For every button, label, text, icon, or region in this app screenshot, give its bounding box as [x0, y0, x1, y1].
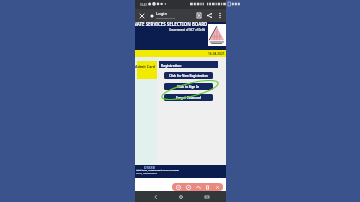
button[interactable]: Screenshot — [203, 183, 211, 191]
button[interactable]: Camera — [194, 183, 202, 191]
staticText: Click for New Registration — [169, 74, 209, 78]
button[interactable]: Click for New Registration — [164, 72, 213, 79]
button[interactable]: Close — [136, 10, 147, 21]
button[interactable]: Draw — [184, 183, 192, 191]
staticText: Forgot Password — [176, 96, 201, 100]
button[interactable]: Stop recording — [213, 183, 221, 191]
staticText: DSSSB — [144, 165, 155, 170]
staticText: 14-04-2021 — [208, 52, 225, 56]
button[interactable]: Click to Sign In — [164, 83, 213, 90]
staticText: dsssb — [136, 167, 143, 170]
staticText: Admit Card — [135, 64, 155, 69]
staticText: Government of NCT of Delhi — [169, 28, 206, 32]
button[interactable]: More options — [215, 9, 225, 22]
button[interactable]: Forgot Password — [164, 94, 213, 101]
staticText: DELHI SUBORDINATE SERVICES SELECTION BOA… — [135, 22, 226, 27]
staticText: Registration — [161, 63, 182, 67]
staticText: dsssbonline.nic.in — [156, 17, 176, 20]
button[interactable]: Home — [175, 191, 186, 202]
button[interactable]: Back — [150, 191, 161, 202]
staticText: FC-18, Karkardooma — [136, 172, 206, 175]
staticText: Login — [156, 11, 167, 17]
staticText: New Delhi, Government of NCT of Delhi — [136, 169, 206, 172]
button[interactable]: Recents — [201, 191, 212, 202]
button[interactable]: Download — [193, 9, 204, 22]
staticText: 10:43 — [140, 3, 147, 7]
staticText: Click to Sign In — [177, 85, 200, 89]
button[interactable]: Share — [204, 9, 215, 22]
button[interactable]: Admit Card — [137, 61, 157, 79]
button[interactable]: Pause recording — [174, 183, 182, 191]
